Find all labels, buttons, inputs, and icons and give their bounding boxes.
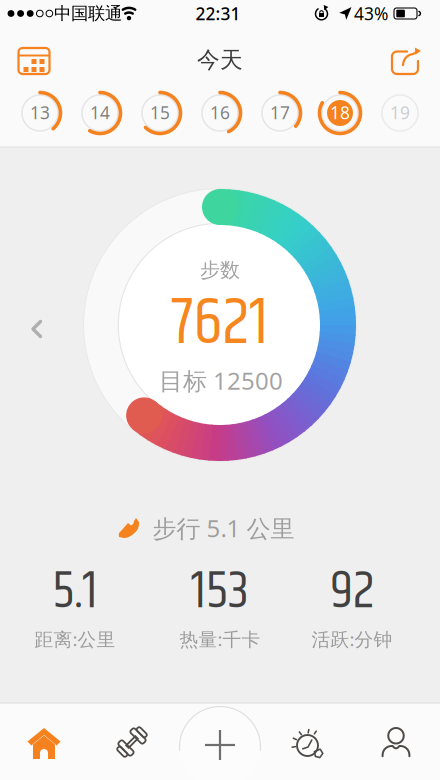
staticText: 18 [330,101,350,124]
button[interactable]: 13日 [17,90,63,136]
button[interactable]: 发现 [292,729,324,759]
staticText: 19 [390,101,410,124]
staticText: 今天 [197,46,243,74]
button[interactable]: 16日 [197,90,243,136]
staticText: 43% [354,2,388,25]
button[interactable]: 18日 [317,90,363,136]
staticText: 距离:公里 [34,627,115,651]
button[interactable]: 分享 [390,47,422,75]
staticText: 活跃:分钟 [311,627,392,651]
staticText: 7621 [171,273,268,375]
staticText: 目标 12500 [159,365,283,396]
staticText: 15 [150,101,170,124]
button[interactable]: 17日 [257,90,303,136]
button[interactable]: 14日 [77,90,123,136]
button[interactable]: 日历 [17,47,50,75]
button[interactable]: 19日 [377,90,423,136]
staticText: 步数 [200,258,240,282]
staticText: 中国联通 [54,3,122,24]
staticText: 92 [330,551,374,633]
button[interactable]: 15日 [137,90,183,136]
staticText: 153 [191,551,249,633]
button[interactable]: 添加 [204,729,236,761]
staticText: 步行 5.1 公里 [152,512,294,544]
button[interactable]: 我的 [381,727,411,757]
button[interactable]: 首页 [27,728,60,760]
staticText: 13 [30,101,50,124]
staticText: 5.1 [52,551,97,633]
staticText: 16 [210,101,230,124]
staticText: 17 [270,101,290,124]
staticText: 14 [90,101,110,124]
staticText: 热量:千卡 [179,627,260,651]
button[interactable]: 锻炼 [114,724,150,760]
staticText: 22:31 [195,2,240,25]
